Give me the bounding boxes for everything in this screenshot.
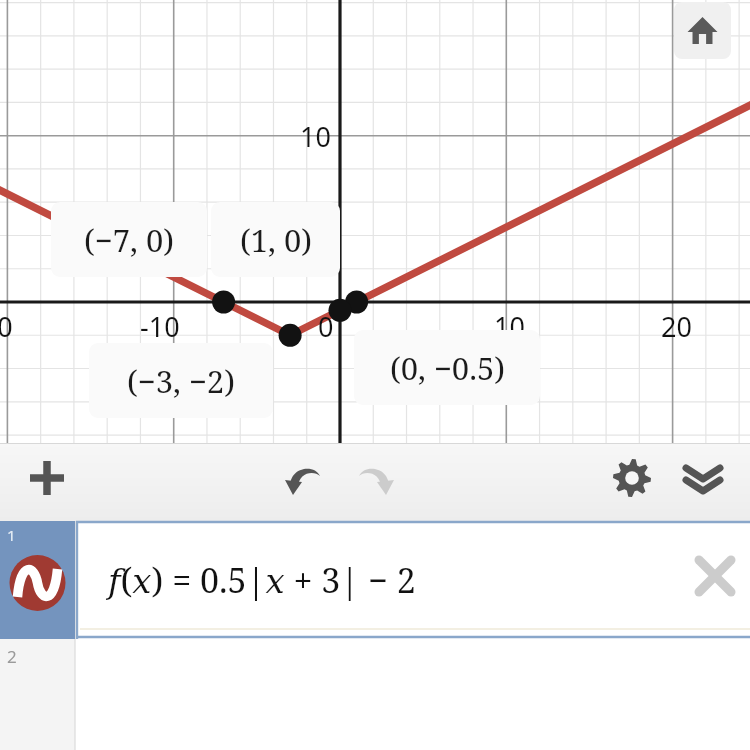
staticText: 10 [300,118,331,155]
staticText: 0 [318,308,334,345]
button[interactable]: Collapse [672,447,734,509]
button[interactable]: Undo [272,447,334,509]
button[interactable]: Delete expression [690,551,740,601]
button[interactable]: 2 [0,639,750,750]
button[interactable]: 1 [0,521,750,639]
staticText: (−3, −2) [127,360,235,402]
staticText: (1, 0) [240,219,312,261]
staticText: (0, −0.5) [390,347,505,389]
staticText: 2 [7,645,17,668]
staticText: 𝑓(𝑥) = 0.5|𝑥 + 3| − 2 [108,557,416,603]
staticText: 10 [494,308,525,345]
staticText: 1 [7,525,16,545]
button[interactable]: Home [674,2,731,59]
button[interactable]: Redo [345,447,407,509]
staticText: -10 [140,308,180,345]
staticText: 20 [661,308,692,345]
button[interactable]: Settings [601,447,663,509]
staticText: (−7, 0) [84,219,174,261]
staticText: -20 [0,308,13,345]
button[interactable]: Add expression [16,447,78,509]
